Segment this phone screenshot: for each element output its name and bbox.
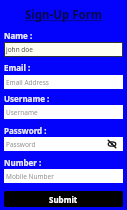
staticText: Email : [4,62,31,73]
button[interactable]: Username [4,105,123,119]
staticText: Sign-Up Form [25,7,103,23]
staticText: Password : [4,125,47,136]
staticText: john doe [6,45,33,54]
staticText: Password [6,140,36,149]
button[interactable]: Password [4,137,123,151]
staticText: Submit [49,194,78,205]
staticText: Name : [4,30,33,41]
staticText: Email Address [6,78,49,87]
button[interactable]: john doe [4,42,123,57]
button[interactable]: Mobile Number [4,169,123,183]
button[interactable]: Submit [4,191,123,207]
staticText: Username [6,108,38,117]
staticText: Username : [4,93,50,104]
button[interactable]: Show password [106,138,118,150]
staticText: Mobile Number [6,172,54,181]
staticText: Number : [4,157,42,168]
button[interactable]: Email Address [4,75,123,89]
